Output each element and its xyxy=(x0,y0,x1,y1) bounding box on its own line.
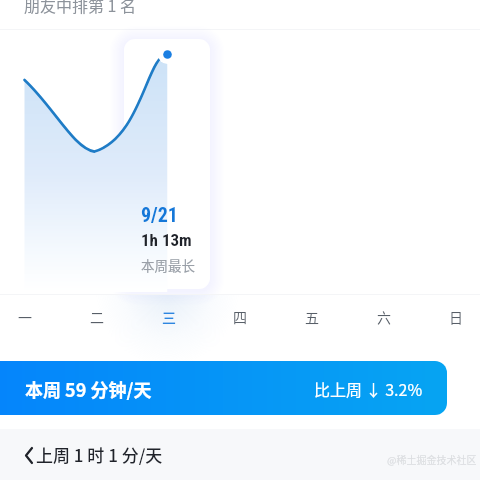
staticText: 1h 13m xyxy=(141,230,192,250)
staticText: 上周 1 时 1 分/天 xyxy=(36,442,163,467)
staticText: 二 xyxy=(90,307,104,327)
staticText: 9/21 xyxy=(141,203,178,226)
staticText: 一 xyxy=(18,307,32,327)
staticText: 三 xyxy=(162,307,176,327)
button[interactable]: 本周 59 分钟/天 xyxy=(0,361,447,415)
button[interactable]: 日 xyxy=(432,293,480,340)
button[interactable]: 五 xyxy=(288,293,336,340)
staticText: 朋友中排第 1 名 xyxy=(24,0,137,16)
button[interactable]: 上周 1 时 1 分/天 xyxy=(0,429,480,480)
staticText: 本周 59 分钟/天 xyxy=(25,376,152,402)
button[interactable]: 二 xyxy=(73,293,121,340)
button[interactable]: 一 xyxy=(1,293,49,340)
button[interactable]: 9/21 xyxy=(124,39,210,289)
staticText: 比上周 ↓ 3.2% xyxy=(314,377,423,400)
staticText: 日 xyxy=(449,307,463,327)
staticText: 五 xyxy=(305,307,319,327)
button[interactable]: 四 xyxy=(216,293,264,340)
staticText: 本周最长 xyxy=(141,255,195,275)
button[interactable]: 三 xyxy=(145,293,193,340)
staticText: 六 xyxy=(377,307,391,327)
staticText: 四 xyxy=(233,307,247,327)
staticText: @稀土掘金技术社区 xyxy=(387,452,477,466)
button[interactable]: 六 xyxy=(360,293,408,340)
